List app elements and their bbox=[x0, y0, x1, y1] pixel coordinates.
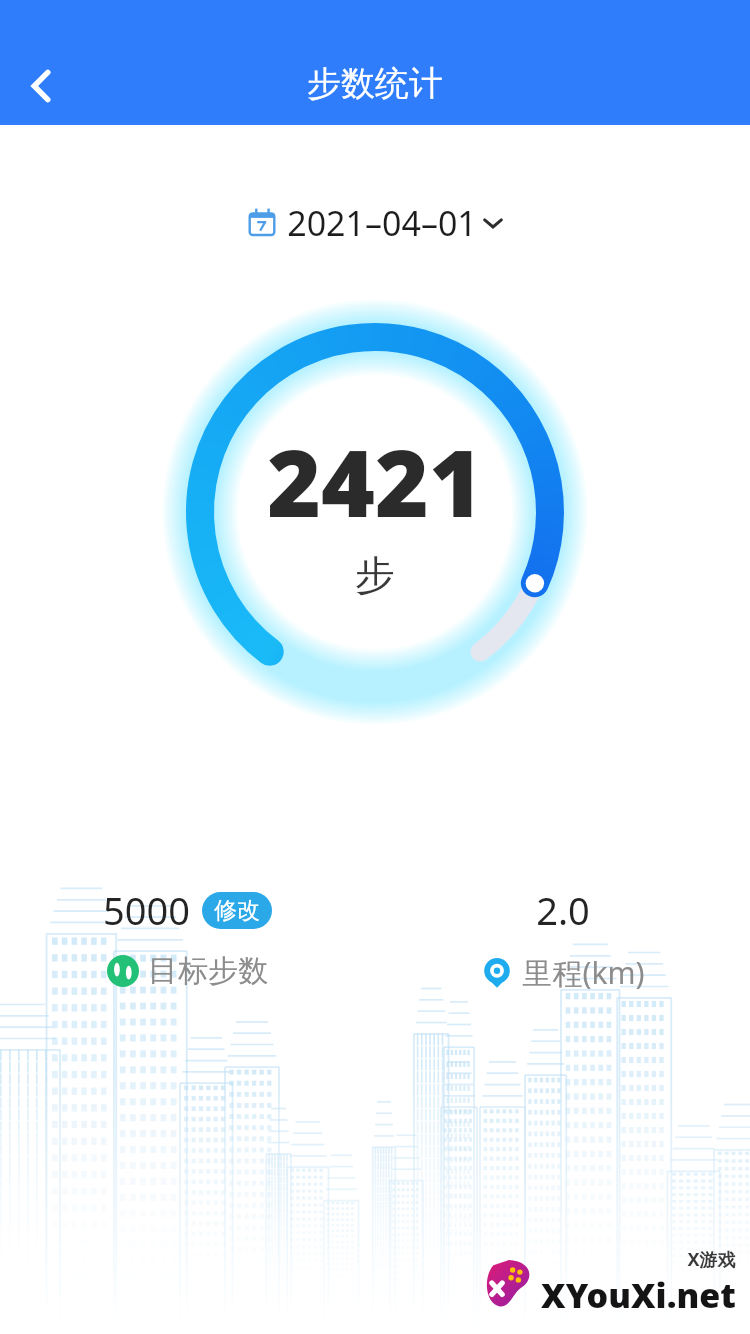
staticText: 步 bbox=[355, 550, 395, 600]
staticText: 5000 bbox=[103, 884, 190, 936]
staticText: X游戏 bbox=[687, 1247, 736, 1272]
staticText: 2421 bbox=[267, 419, 483, 544]
staticText: 目标步数 bbox=[148, 952, 268, 990]
button[interactable]: 修改 bbox=[202, 892, 272, 929]
staticText: 2.0 bbox=[536, 884, 590, 936]
staticText: 修改 bbox=[214, 896, 260, 925]
staticText: 里程(km) bbox=[522, 952, 645, 993]
staticText: XYouXi.net bbox=[541, 1272, 736, 1318]
staticText: 步数统计 bbox=[307, 62, 443, 105]
button[interactable]: 2.0 bbox=[375, 884, 750, 993]
button[interactable]: Back bbox=[8, 53, 74, 119]
button[interactable]: 5000 bbox=[0, 884, 375, 990]
button[interactable]: 2021–04–01 bbox=[239, 196, 512, 250]
staticText: 2021–04–01 bbox=[287, 200, 477, 246]
